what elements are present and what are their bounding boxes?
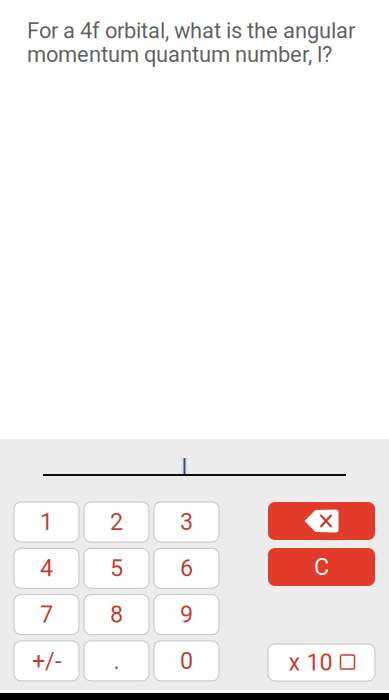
button[interactable]: 8 xyxy=(84,595,149,635)
staticText: 6 xyxy=(180,555,193,582)
staticText: C xyxy=(314,553,329,581)
button[interactable]: 9 xyxy=(154,595,219,635)
button[interactable]: 2 xyxy=(84,502,149,542)
button[interactable]: +/- xyxy=(14,641,79,681)
staticText: 4 xyxy=(40,555,53,582)
button[interactable]: Backspace xyxy=(268,502,375,540)
staticText: 9 xyxy=(180,601,193,628)
staticText: 0 xyxy=(180,647,193,674)
staticText: 7 xyxy=(40,601,53,628)
button[interactable]: 7 xyxy=(14,595,79,635)
staticText: 3 xyxy=(180,508,193,536)
button[interactable]: 5 xyxy=(84,548,149,588)
button[interactable]: 4 xyxy=(14,548,79,588)
button[interactable]: 3 xyxy=(154,502,219,542)
staticText: 2 xyxy=(110,508,123,536)
button[interactable]: C xyxy=(268,548,375,586)
button[interactable]: . xyxy=(84,641,149,681)
staticText: 1 xyxy=(40,508,53,536)
button[interactable]: 0 xyxy=(154,641,219,681)
staticText: 8 xyxy=(110,601,123,628)
staticText: For a 4f orbital, what is the angular mo… xyxy=(27,18,355,67)
staticText: x 10 xyxy=(288,649,332,676)
staticText: +/- xyxy=(32,647,61,674)
button[interactable]: x 10 xyxy=(268,644,375,681)
button[interactable]: 6 xyxy=(154,548,219,588)
staticText: 5 xyxy=(110,555,123,582)
button[interactable]: 1 xyxy=(14,502,79,542)
staticText: . xyxy=(113,647,119,674)
